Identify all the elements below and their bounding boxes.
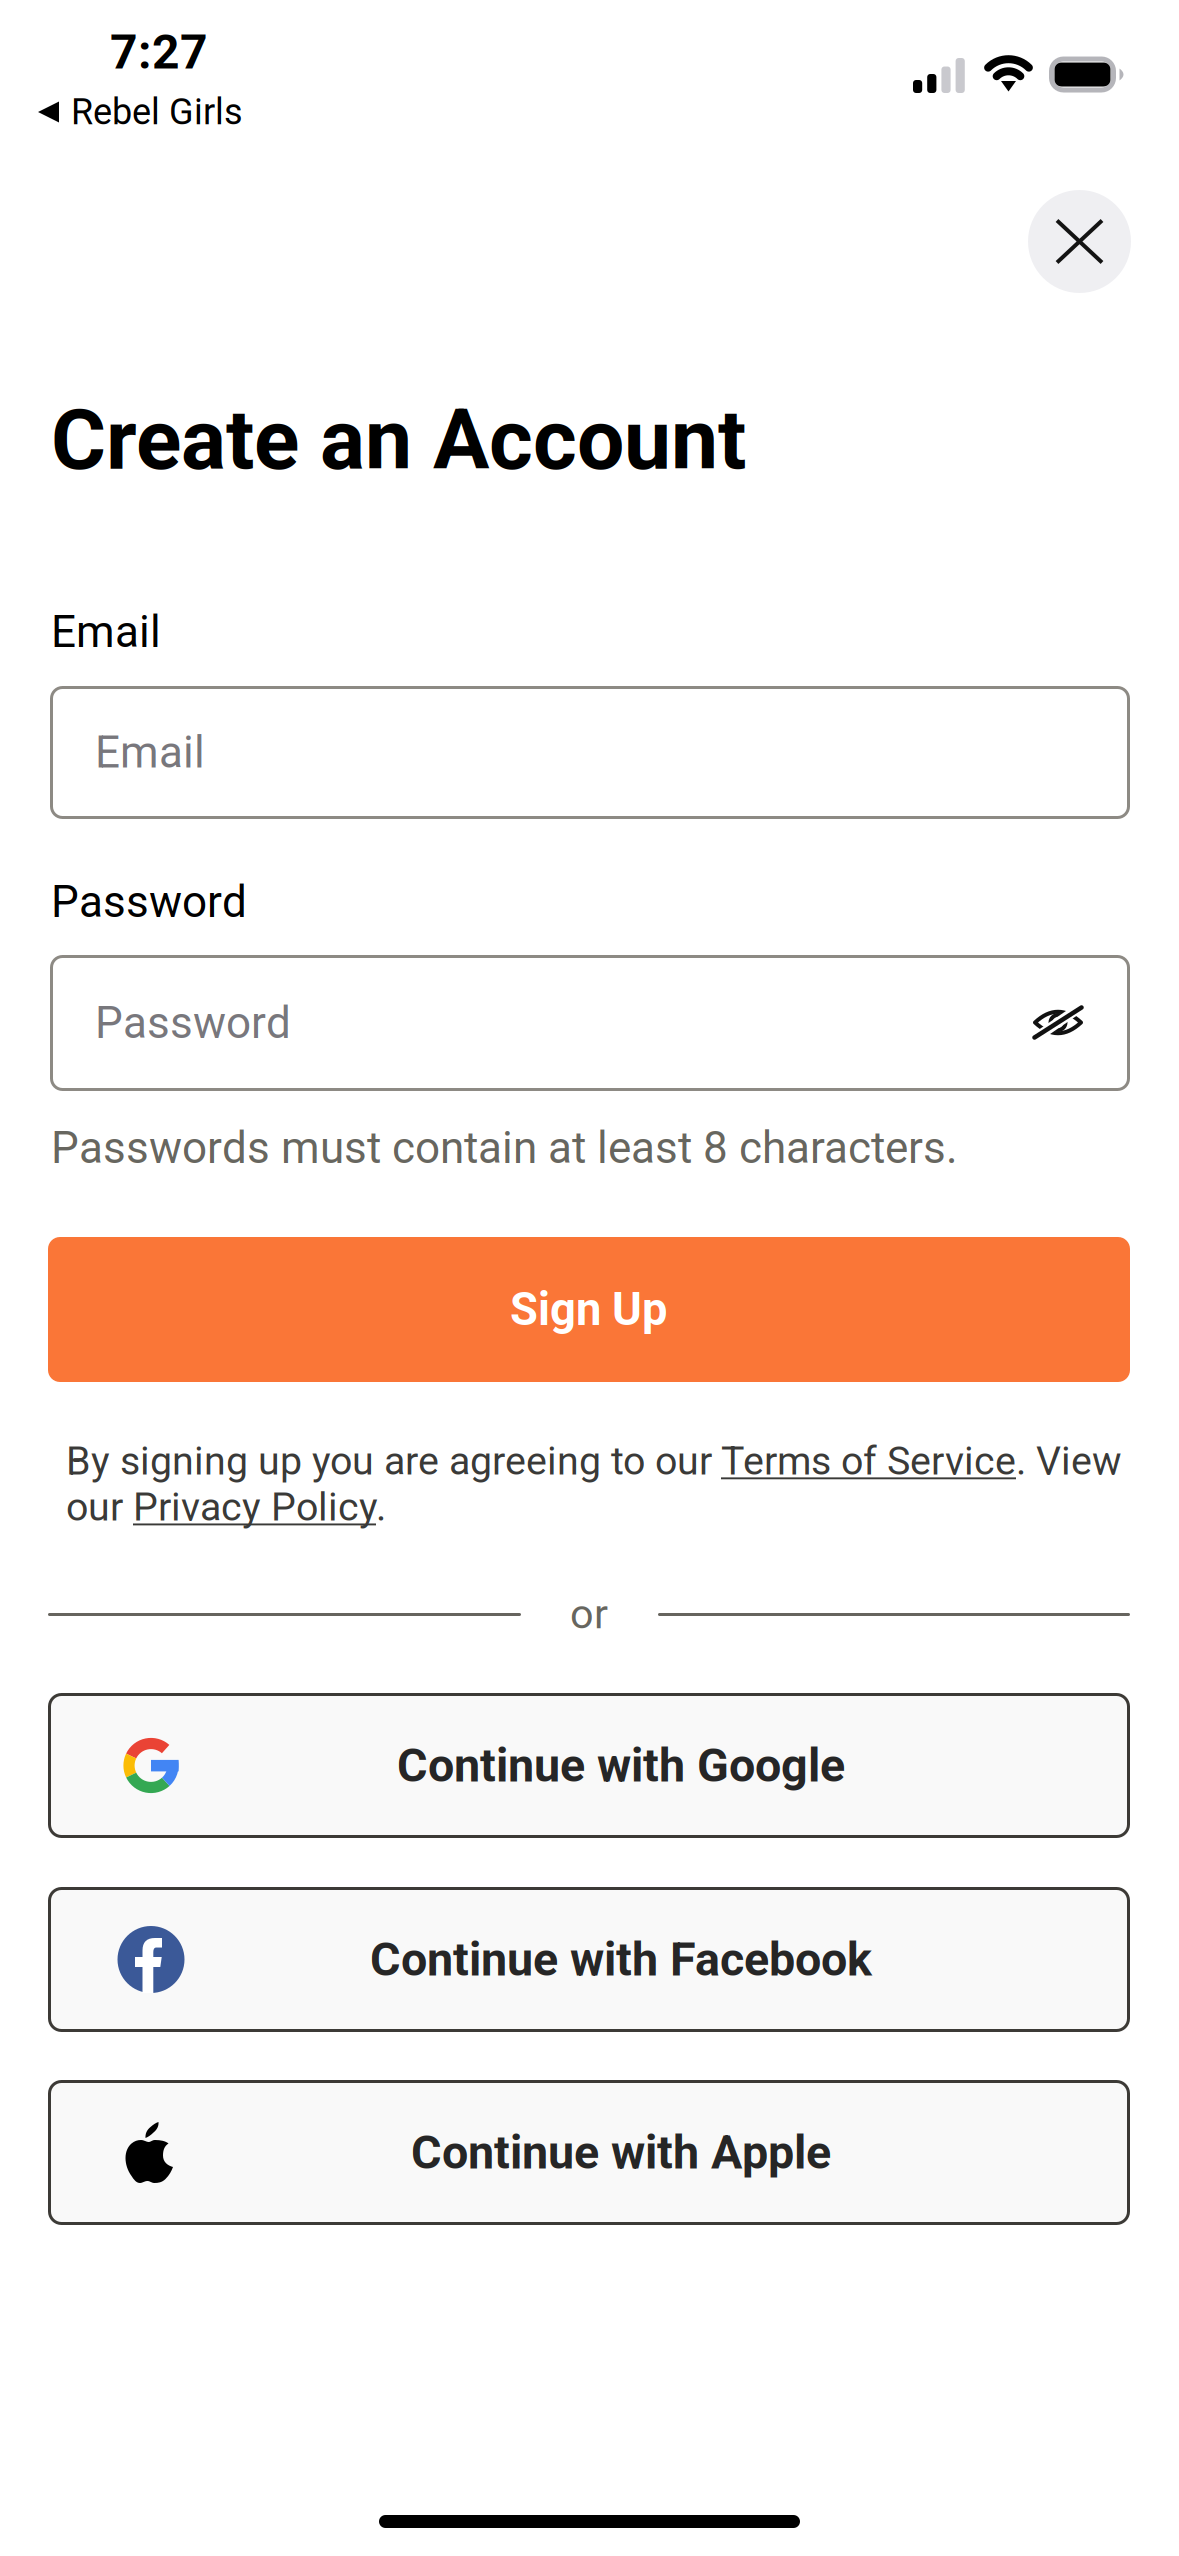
staticText: Continue with Apple	[411, 2125, 831, 2180]
staticText: Continue with Facebook	[370, 1932, 872, 1987]
staticText: Password	[95, 997, 291, 1049]
button[interactable]: Continue with Google	[48, 1693, 1130, 1838]
staticText: Email	[51, 606, 161, 658]
staticText: Passwords must contain at least 8 charac…	[51, 1122, 958, 1174]
button[interactable]: Sign Up	[48, 1237, 1130, 1382]
staticText: Create an Account	[51, 391, 746, 489]
button[interactable]: Show password	[1013, 977, 1103, 1067]
button[interactable]: Continue with Facebook	[48, 1887, 1130, 2032]
staticText: 7:27	[110, 24, 208, 80]
button[interactable]: Close	[1028, 190, 1131, 293]
button[interactable]: Continue with Apple	[48, 2080, 1130, 2225]
staticText: Password	[51, 876, 247, 928]
staticText: Rebel Girls	[71, 91, 243, 133]
staticText: Sign Up	[510, 1283, 668, 1336]
staticText: Continue with Google	[397, 1738, 845, 1793]
staticText: or	[570, 1590, 608, 1638]
staticText: Email	[95, 727, 205, 778]
staticText: By signing up you are agreeing to our Te…	[66, 1438, 1122, 1530]
button[interactable]: Rebel Girls	[38, 90, 268, 134]
